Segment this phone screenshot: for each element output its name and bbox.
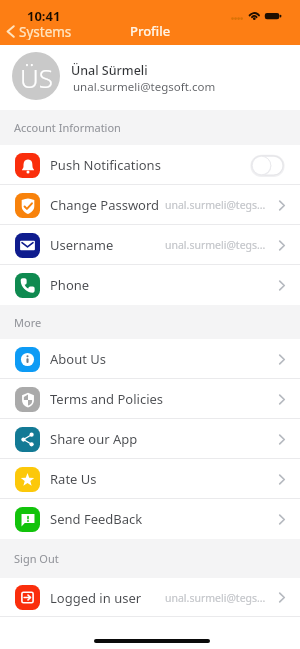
staticText: Push Notifications (50, 156, 161, 174)
button[interactable]: Terms and Policies (0, 379, 300, 419)
staticText: Send FeedBack (50, 510, 143, 528)
staticText: Phone (50, 276, 90, 294)
staticText: Logged in user (50, 589, 142, 607)
button[interactable]: Share our App (0, 419, 300, 459)
button[interactable]: Rate Us (0, 459, 300, 499)
staticText: Sign Out (14, 551, 59, 566)
staticText: Profile (130, 22, 171, 40)
button[interactable]: Push Notifications (0, 145, 300, 185)
button[interactable]: Systems (0, 22, 80, 43)
staticText: Ünal Sürmeli (71, 62, 148, 79)
staticText: Share our App (50, 430, 138, 448)
staticText: unal.surmeli@tegsoft.com (73, 79, 216, 95)
staticText: unal.surmeli@tegsof... (165, 238, 269, 252)
button[interactable]: ÜS (0, 45, 300, 110)
staticText: Change Password (50, 196, 160, 214)
button[interactable]: Username (0, 225, 300, 265)
staticText: About Us (50, 350, 107, 368)
button[interactable]: About Us (0, 339, 300, 379)
staticText: Terms and Policies (50, 390, 164, 408)
staticText: ÜS (20, 60, 53, 95)
staticText: More (14, 315, 42, 330)
staticText: unal.surmeli@tegsof... (165, 198, 269, 212)
button[interactable]: Phone (0, 265, 300, 305)
staticText: Systems (19, 23, 72, 40)
staticText: Username (50, 236, 114, 254)
button[interactable]: Toggle Push Notifications (251, 155, 284, 176)
button[interactable]: Change Password (0, 185, 300, 225)
staticText: unal.surmeli@tegsof... (165, 591, 269, 605)
button[interactable]: Logged in user (0, 578, 300, 617)
staticText: Account Information (14, 120, 121, 135)
staticText: Rate Us (50, 470, 97, 488)
button[interactable]: Send FeedBack (0, 499, 300, 539)
staticText: 10:41 (27, 7, 61, 24)
